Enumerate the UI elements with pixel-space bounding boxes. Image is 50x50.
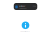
staticText: Tap to open	[19, 7, 27, 9]
staticText: Reminder	[19, 5, 26, 7]
staticText: No Reminders	[20, 31, 30, 32]
staticText: now	[33, 5, 36, 7]
button[interactable]: Reminder	[14, 3, 37, 10]
